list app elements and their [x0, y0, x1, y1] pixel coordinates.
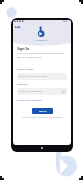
button[interactable]: Sign In	[32, 108, 53, 114]
staticText: Enter your mobile number and password to…	[17, 52, 65, 58]
button[interactable]: Forgot your password?	[17, 99, 42, 102]
staticText: Enter your phone number	[19, 75, 48, 78]
staticText: Phone Number	[17, 68, 34, 71]
staticText: Sign In	[17, 46, 30, 51]
button[interactable]: Enter your phone number	[17, 73, 67, 80]
staticText: RUBENA	[36, 39, 49, 42]
staticText: 2024 © Rubena - Copyright All Rights Res…	[22, 116, 63, 119]
button[interactable]: Enter your password	[17, 88, 67, 95]
staticText: Enter your password	[19, 90, 42, 93]
staticText: Sign In	[39, 110, 47, 113]
button[interactable]: Back	[15, 26, 21, 29]
staticText: Password	[17, 83, 28, 86]
